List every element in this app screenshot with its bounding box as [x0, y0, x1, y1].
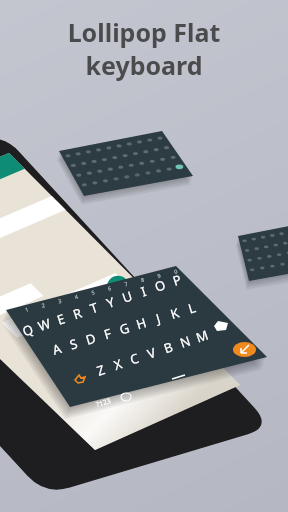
- staticText: Lollipop Flat keyboard: [0, 15, 288, 82]
